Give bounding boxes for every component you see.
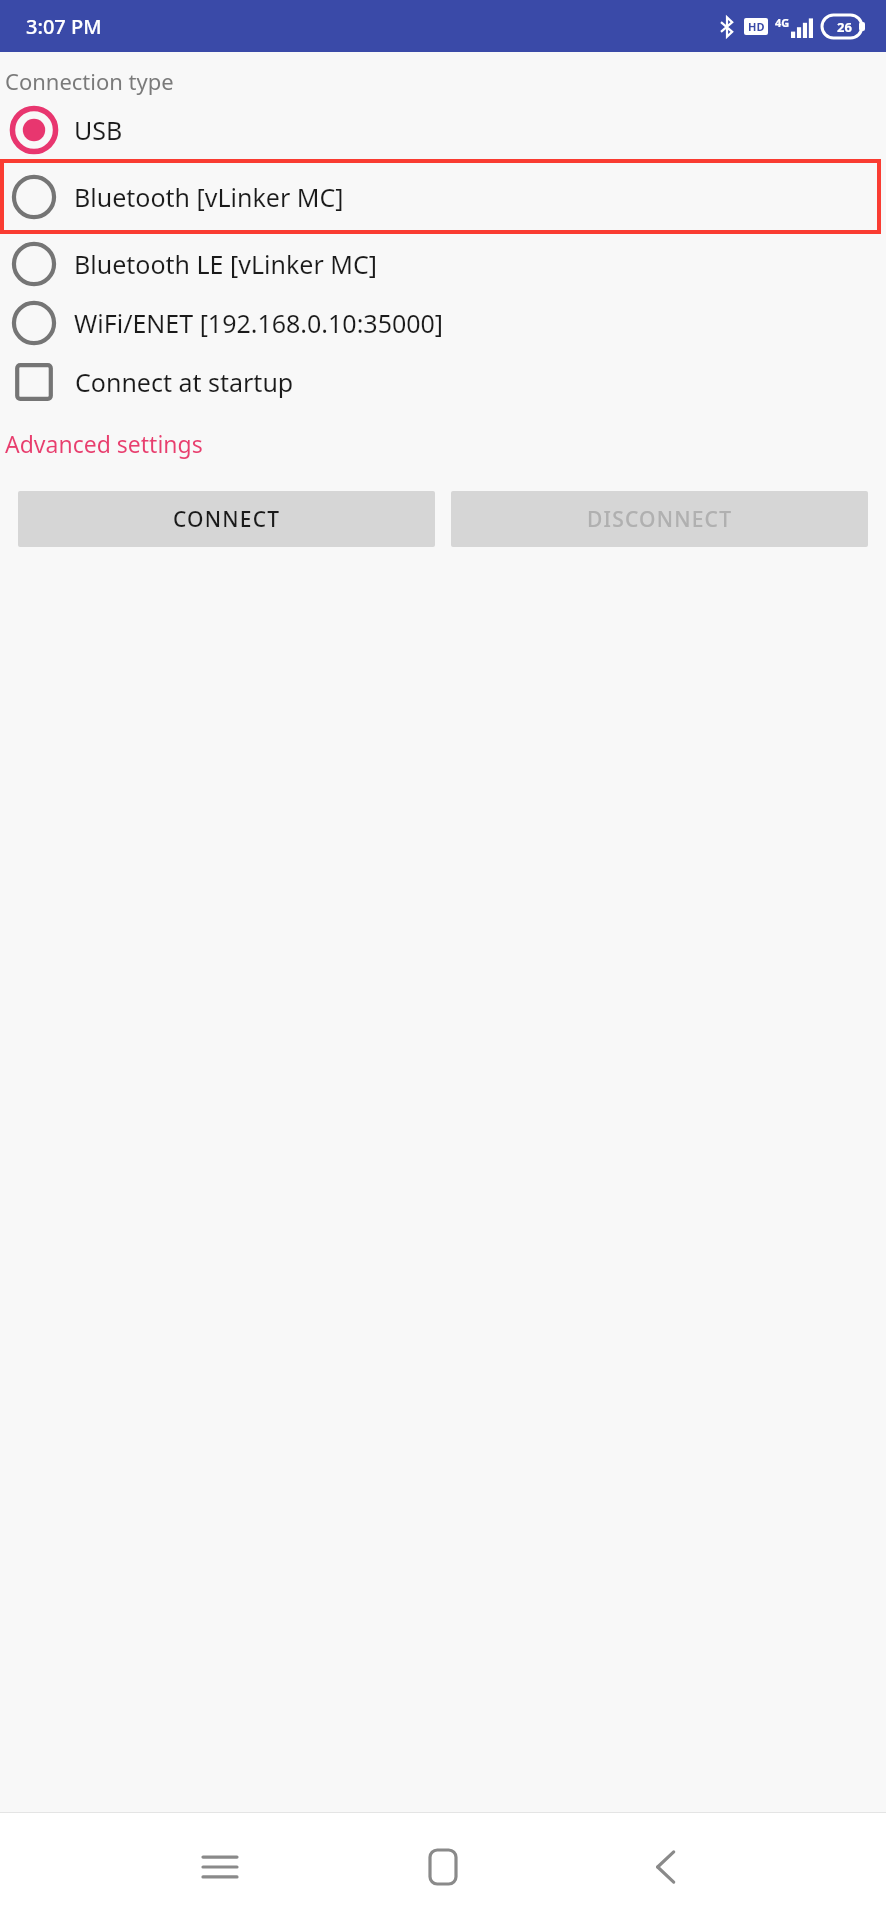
button[interactable]: USB bbox=[0, 100, 886, 159]
staticText: WiFi/ENET [192.168.0.10:35000] bbox=[74, 306, 444, 340]
staticText: 3:07 PM bbox=[26, 13, 102, 40]
button[interactable]: DISCONNECT bbox=[451, 491, 868, 547]
staticText: 4G bbox=[775, 15, 790, 30]
staticText: DISCONNECT bbox=[587, 505, 733, 534]
button[interactable]: Bluetooth LE [vLinker MC] bbox=[0, 234, 886, 293]
button[interactable]: Connect at startup bbox=[0, 352, 886, 412]
staticText: USB bbox=[74, 113, 123, 147]
staticText: Bluetooth [vLinker MC] bbox=[74, 180, 344, 214]
staticText: HD bbox=[748, 19, 765, 34]
button[interactable]: Back bbox=[623, 1824, 709, 1910]
staticText: Connection type bbox=[5, 66, 174, 96]
staticText: Connect at startup bbox=[75, 365, 294, 399]
button[interactable]: CONNECT bbox=[18, 491, 435, 547]
staticText: 26 bbox=[837, 18, 852, 36]
button[interactable]: WiFi/ENET [192.168.0.10:35000] bbox=[0, 293, 886, 352]
button[interactable]: Recent apps bbox=[177, 1824, 263, 1910]
staticText: CONNECT bbox=[173, 505, 281, 534]
button[interactable]: Advanced settings bbox=[0, 424, 203, 463]
button[interactable]: Home bbox=[400, 1824, 486, 1910]
staticText: Bluetooth LE [vLinker MC] bbox=[74, 247, 377, 281]
button[interactable]: Bluetooth [vLinker MC] bbox=[4, 163, 877, 230]
